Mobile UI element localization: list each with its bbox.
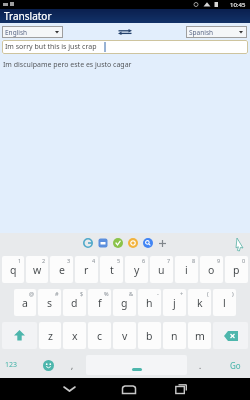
button[interactable]: w	[26, 256, 48, 283]
button[interactable]: Im sorry but this is just crap	[2, 40, 248, 54]
button[interactable]: t	[100, 256, 123, 283]
button[interactable]: g	[113, 289, 136, 316]
button[interactable]: b	[138, 322, 161, 349]
staticText: t	[110, 263, 114, 277]
button[interactable]	[63, 385, 76, 393]
button[interactable]: English	[2, 26, 63, 38]
button[interactable]	[143, 238, 153, 248]
staticText: s	[47, 296, 53, 310]
button[interactable]: o	[200, 256, 223, 283]
staticText: @	[29, 290, 34, 297]
button[interactable]	[38, 352, 59, 378]
staticText: h	[146, 296, 153, 310]
staticText: g	[121, 296, 128, 310]
button[interactable]	[213, 322, 248, 349]
button[interactable]: j	[163, 289, 186, 316]
staticText: -	[157, 290, 159, 297]
button[interactable]	[122, 385, 136, 394]
button[interactable]: q	[2, 256, 24, 283]
staticText: Im sorry but this is just crap	[5, 42, 97, 52]
staticText: 5	[117, 257, 121, 264]
button[interactable]: k	[188, 289, 211, 316]
button[interactable]: Spanish	[186, 26, 247, 38]
staticText: +	[180, 290, 184, 297]
button[interactable]: a	[14, 289, 36, 316]
staticText: v	[122, 329, 128, 343]
staticText: q	[10, 263, 17, 277]
staticText: 6	[142, 257, 146, 264]
staticText: w	[33, 263, 42, 277]
button[interactable]	[158, 239, 167, 248]
staticText: 8	[192, 257, 196, 264]
staticText: e	[59, 263, 65, 277]
button[interactable]: i	[175, 256, 198, 283]
staticText: (	[207, 290, 209, 297]
button[interactable]: d	[63, 289, 86, 316]
button[interactable]: m	[188, 322, 211, 349]
staticText: i	[185, 263, 188, 277]
staticText: 10:45	[230, 1, 246, 9]
button[interactable]: y	[125, 256, 148, 283]
staticText: 3	[67, 257, 71, 264]
staticText: r	[84, 263, 89, 277]
button[interactable]	[83, 238, 93, 248]
button[interactable]: h	[138, 289, 161, 316]
button[interactable]	[113, 238, 123, 248]
staticText: p	[233, 263, 240, 277]
staticText: k	[197, 296, 203, 310]
staticText: y	[134, 263, 140, 277]
staticText: 123	[5, 360, 18, 370]
button[interactable]: ,	[59, 352, 85, 378]
button[interactable]	[175, 384, 187, 394]
button[interactable]	[86, 355, 187, 375]
button[interactable]: Go	[212, 352, 249, 378]
staticText: j	[173, 296, 176, 310]
staticText: m	[195, 329, 205, 343]
staticText: 0	[242, 257, 246, 264]
staticText: Translator	[4, 9, 52, 23]
button[interactable]: p	[225, 256, 248, 283]
button[interactable]: 123	[1, 352, 38, 378]
staticText: &	[129, 290, 134, 297]
button[interactable]: u	[150, 256, 173, 283]
staticText: Go	[230, 360, 241, 371]
staticText: l	[223, 296, 226, 310]
staticText: 4	[92, 257, 96, 264]
button[interactable]	[98, 238, 108, 248]
button[interactable]	[128, 238, 138, 248]
staticText: d	[71, 296, 78, 310]
button[interactable]: z	[39, 322, 61, 349]
staticText: a	[22, 296, 28, 310]
button[interactable]: f	[88, 289, 111, 316]
staticText: b	[146, 329, 153, 343]
staticText: #	[55, 290, 59, 297]
staticText: z	[48, 329, 53, 343]
button[interactable]	[2, 322, 37, 349]
button[interactable]: .	[188, 352, 212, 378]
staticText: u	[158, 263, 165, 277]
button[interactable]: x	[63, 322, 86, 349]
staticText: ,	[71, 360, 74, 371]
button[interactable]: s	[38, 289, 61, 316]
staticText: .	[199, 360, 202, 371]
button[interactable]: c	[88, 322, 111, 349]
staticText: n	[171, 329, 178, 343]
staticText: 1	[18, 257, 22, 264]
button[interactable]: l	[213, 289, 236, 316]
staticText: 7	[167, 257, 171, 264]
staticText: o	[208, 263, 215, 277]
staticText: $	[80, 290, 84, 297]
button[interactable]: v	[113, 322, 136, 349]
staticText: English	[5, 28, 28, 37]
staticText: 9	[217, 257, 221, 264]
staticText: %	[104, 290, 109, 297]
staticText: Im disculpame pero este es justo cagar	[3, 60, 132, 70]
button[interactable]: n	[163, 322, 186, 349]
staticText: 2	[42, 257, 46, 264]
button[interactable]: r	[75, 256, 98, 283]
staticText: x	[72, 329, 78, 343]
button[interactable]	[117, 29, 133, 35]
staticText: c	[97, 329, 103, 343]
button[interactable]: e	[50, 256, 73, 283]
staticText: )	[232, 290, 234, 297]
